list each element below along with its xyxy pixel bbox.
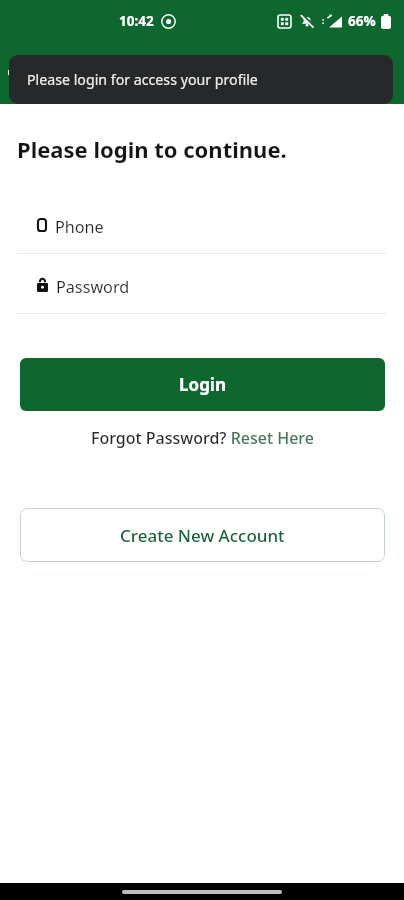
- other: Mobile signal: [321, 14, 342, 28]
- button[interactable]: Login: [20, 358, 385, 411]
- button[interactable]: Please login for access your profile: [9, 55, 393, 104]
- other: Notifications silenced: [300, 14, 314, 28]
- staticText: Login: [179, 373, 227, 396]
- staticText: 10:42: [119, 12, 154, 30]
- button[interactable]: Forgot Password? Reset Here: [91, 427, 314, 449]
- other: App status: [278, 15, 291, 28]
- button[interactable]: Create New Account: [20, 508, 385, 562]
- staticText: Create New Account: [120, 524, 285, 547]
- staticText: 66%: [348, 12, 376, 30]
- other: Battery 66 percent: [381, 14, 391, 29]
- button[interactable]: Home: [122, 890, 282, 894]
- button[interactable]: Phone: [17, 196, 386, 254]
- staticText: Please login to continue.: [17, 134, 287, 164]
- staticText: Phone: [55, 216, 104, 234]
- staticText: Password: [56, 276, 130, 294]
- staticText: Please login for access your profile: [27, 70, 258, 89]
- button[interactable]: Password: [17, 256, 386, 314]
